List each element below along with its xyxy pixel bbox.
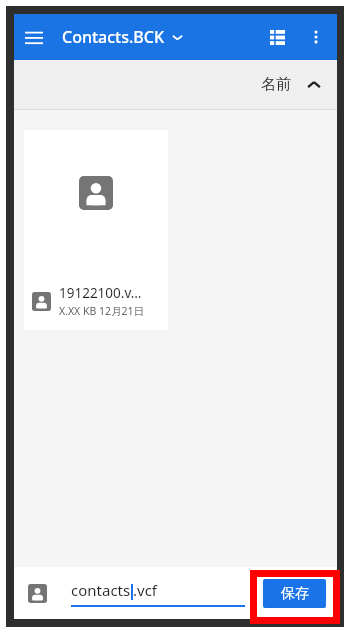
staticText: contacts — [71, 580, 131, 600]
button[interactable]: 19122100.v… — [24, 130, 168, 330]
button[interactable]: 名前 — [251, 69, 337, 100]
staticText: 名前 — [261, 75, 291, 94]
button[interactable]: contacts — [71, 580, 245, 607]
staticText: Contacts.BCK — [62, 26, 165, 48]
staticText: .vcf — [133, 580, 158, 600]
button[interactable]: Change view mode — [257, 17, 297, 57]
staticText: X.XX KB 12月21日 — [59, 304, 145, 318]
button[interactable]: Open navigation menu — [14, 17, 54, 57]
staticText: 保存 — [281, 585, 309, 603]
button[interactable]: 保存 — [263, 579, 326, 608]
button[interactable]: More options — [297, 18, 335, 56]
staticText: 19122100.v… — [59, 284, 142, 302]
button[interactable]: Contacts.BCK — [62, 26, 183, 48]
